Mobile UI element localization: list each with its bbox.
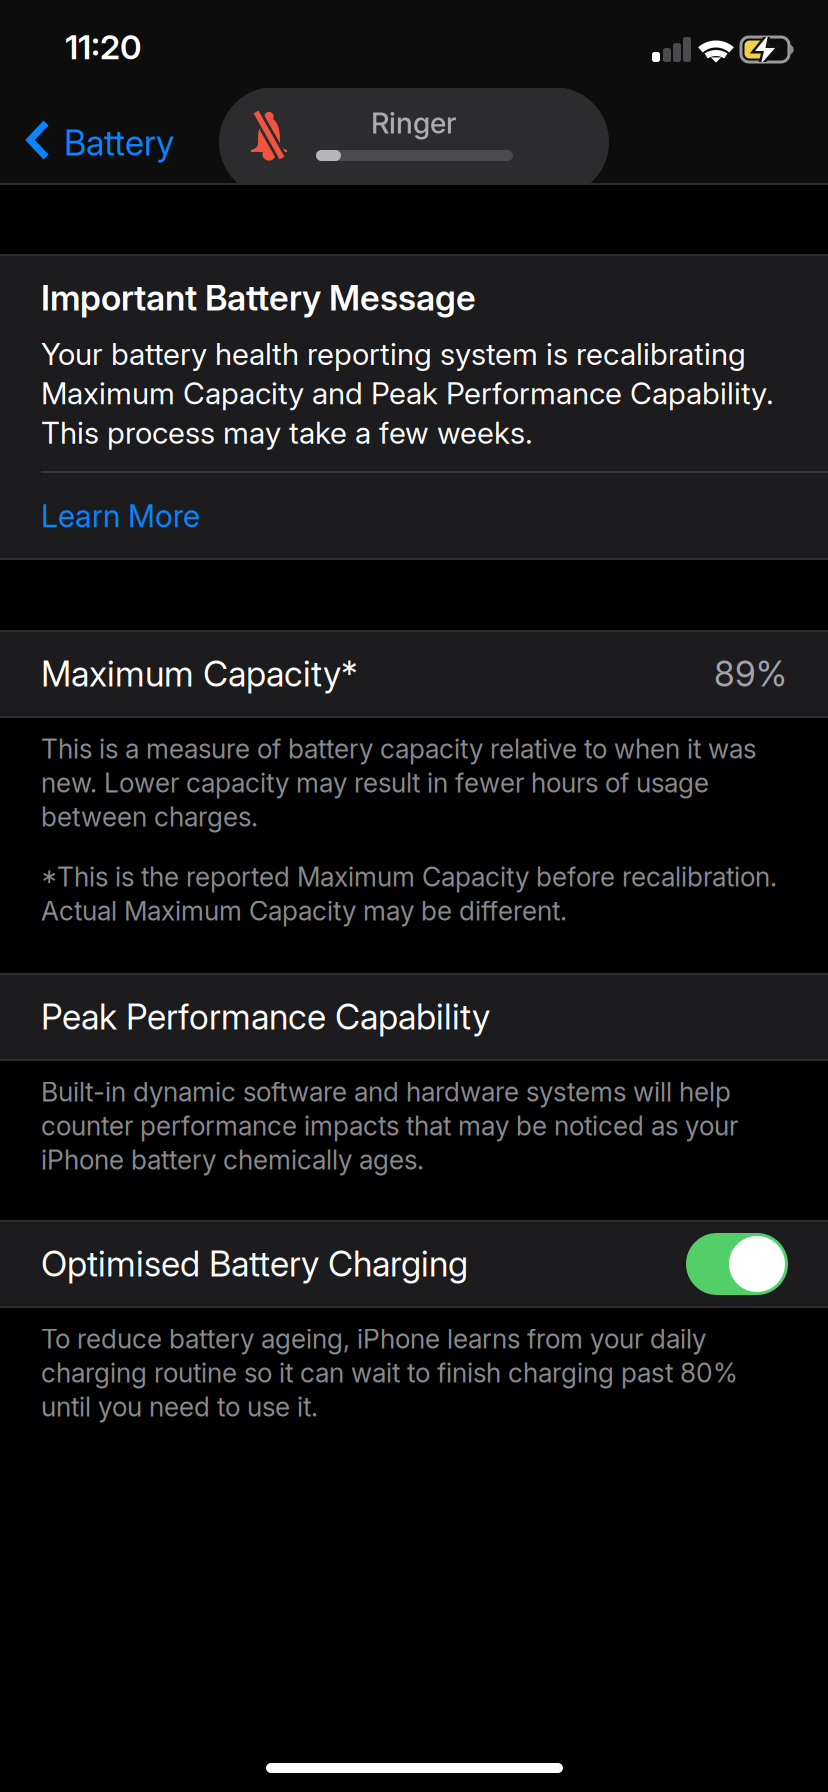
staticText: Your battery health reporting system is … — [41, 336, 774, 451]
staticText: Optimised Battery Charging — [41, 1243, 468, 1285]
staticText: 11:20 — [65, 27, 142, 67]
button[interactable]: Battery — [0, 88, 200, 185]
staticText: Important Battery Message — [41, 277, 476, 319]
staticText: Peak Performance Capability — [41, 996, 490, 1038]
staticText: To reduce battery ageing, iPhone learns … — [41, 1323, 738, 1423]
staticText: *This is the reported Maximum Capacity b… — [41, 861, 777, 927]
button[interactable]: Optimised Battery Charging toggle, on — [0, 1220, 102, 1282]
staticText: Maximum Capacity* — [41, 653, 358, 695]
staticText: 89% — [714, 653, 787, 695]
button[interactable]: Learn More — [0, 254, 746, 342]
staticText: This is a measure of battery capacity re… — [41, 733, 756, 833]
staticText: Ringer — [371, 106, 457, 140]
staticText: Learn More — [41, 497, 200, 534]
staticText: Built-in dynamic software and hardware s… — [41, 1076, 738, 1176]
staticText: Battery — [64, 122, 174, 164]
